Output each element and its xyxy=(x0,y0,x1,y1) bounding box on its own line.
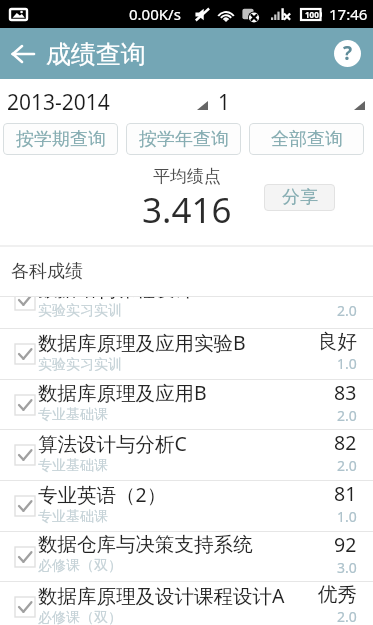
staticText: 92 xyxy=(334,531,357,558)
staticText: 100 xyxy=(305,9,319,20)
staticText: 实验实习实训 xyxy=(38,356,122,374)
button[interactable]: Help xyxy=(322,28,373,79)
staticText: 成绩查询 xyxy=(46,39,146,70)
staticText: 1.0 xyxy=(337,507,357,526)
staticText: 实验实习实训 xyxy=(38,302,122,320)
staticText: 各科成绩 xyxy=(11,260,83,283)
staticText: 按学年查询 xyxy=(139,128,229,151)
staticText: 0.00K/s xyxy=(129,4,181,24)
staticText: 优秀 xyxy=(318,582,357,607)
staticText: 良好 xyxy=(318,329,357,354)
staticText: 82 xyxy=(334,429,357,456)
button[interactable]: 数据仓库与决策支持系统 xyxy=(0,532,373,581)
staticText: 专业基础课 xyxy=(38,457,108,475)
button[interactable]: 全部查询 xyxy=(249,123,364,155)
staticText: 2013-2014 xyxy=(7,88,110,117)
staticText: 专业基础课 xyxy=(38,508,108,526)
staticText: 数据库原理及应用B xyxy=(38,379,207,406)
button[interactable]: 按学年查询 xyxy=(126,123,241,155)
staticText: 1 xyxy=(218,88,231,117)
staticText: 数据库原理及应用实验B xyxy=(38,329,246,356)
button[interactable]: 按学期查询 xyxy=(3,123,118,155)
button[interactable]: Back xyxy=(0,28,46,79)
staticText: 17:46 xyxy=(329,4,368,24)
staticText: 专业基础课 xyxy=(38,406,108,424)
staticText: 数据结构课程设计A xyxy=(38,297,207,302)
staticText: 2.0 xyxy=(337,607,357,625)
staticText: 数据库原理及设计课程设计A xyxy=(38,582,285,609)
button[interactable]: 数据库原理及设计课程设计A xyxy=(0,582,373,625)
staticText: 3.0 xyxy=(337,558,357,577)
staticText: 3.416 xyxy=(142,186,232,234)
button[interactable]: 分享 xyxy=(264,184,335,211)
staticText: ? xyxy=(343,40,353,66)
staticText: 83 xyxy=(334,379,357,406)
button[interactable]: 数据结构课程设计A xyxy=(0,297,373,328)
staticText: 按学期查询 xyxy=(16,128,106,151)
staticText: 专业英语（2） xyxy=(38,481,167,508)
button[interactable]: 数据库原理及应用实验B xyxy=(0,329,373,379)
button[interactable]: 1 xyxy=(186,79,373,123)
staticText: 平均绩点 xyxy=(153,166,221,187)
staticText: 全部查询 xyxy=(271,128,343,151)
staticText: 2.0 xyxy=(337,456,357,475)
staticText: 2.0 xyxy=(337,301,357,320)
staticText: 数据仓库与决策支持系统 xyxy=(38,532,253,557)
staticText: 分享 xyxy=(282,186,318,209)
staticText: 算法设计与分析C xyxy=(38,430,187,457)
button[interactable]: 专业英语（2） xyxy=(0,481,373,531)
staticText: 81 xyxy=(334,480,357,507)
button[interactable]: 数据库原理及应用B xyxy=(0,380,373,429)
staticText: 1.0 xyxy=(337,354,357,373)
staticText: 2.0 xyxy=(337,406,357,425)
staticText: 必修课（双） xyxy=(38,557,122,575)
button[interactable]: 算法设计与分析C xyxy=(0,430,373,480)
staticText: 必修课（双） xyxy=(38,609,122,625)
button[interactable]: 2013-2014 xyxy=(0,79,186,123)
